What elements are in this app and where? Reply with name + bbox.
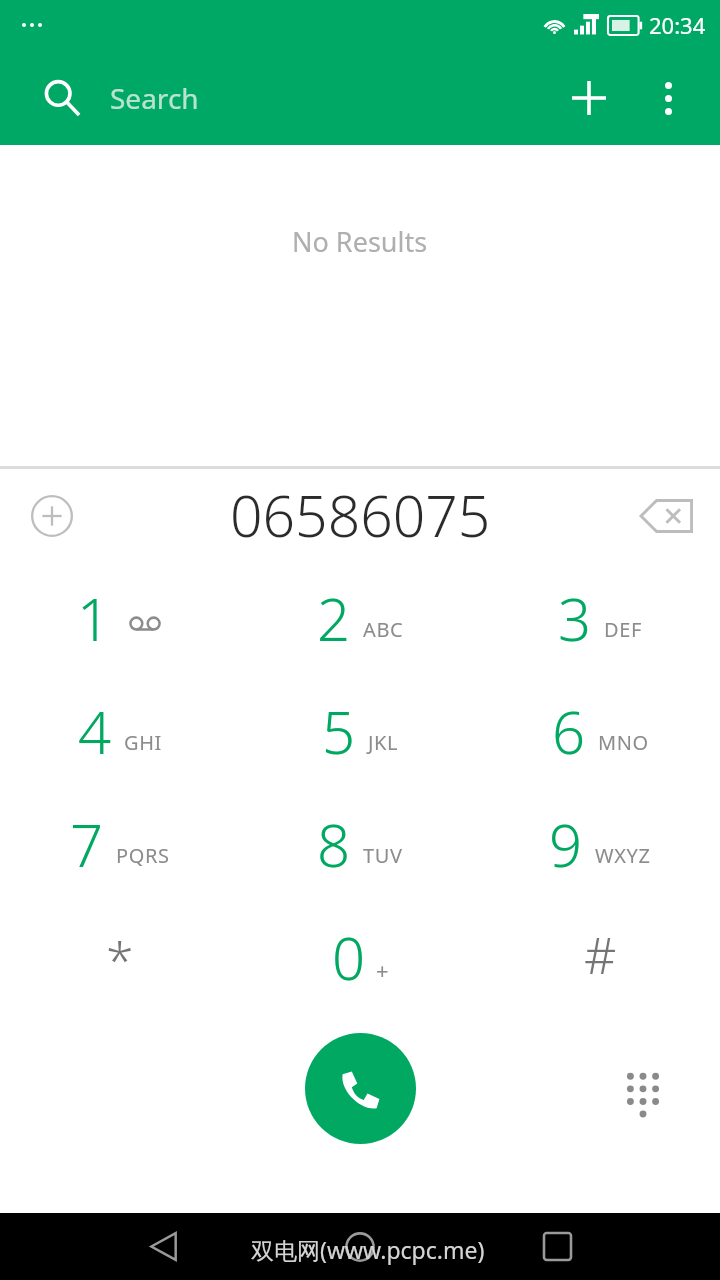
button[interactable]: 4 <box>0 675 240 788</box>
staticText: TUV <box>363 842 403 869</box>
staticText: DEF <box>604 616 642 643</box>
button[interactable]: 9 <box>480 788 720 901</box>
button[interactable]: 7 <box>0 788 240 901</box>
staticText: 5 <box>322 692 356 771</box>
staticText: Search <box>110 79 199 117</box>
staticText: 4 <box>78 692 112 771</box>
button[interactable]: Search <box>36 72 88 124</box>
button[interactable]: 3 <box>480 562 720 675</box>
button[interactable]: Add contact <box>558 67 620 129</box>
staticText: WXYZ <box>595 842 651 869</box>
staticText: * <box>106 926 134 994</box>
staticText: ABC <box>363 616 404 643</box>
staticText: + <box>376 955 389 985</box>
staticText: No Results <box>292 223 428 260</box>
staticText: MNO <box>598 729 649 756</box>
staticText: 8 <box>317 805 351 884</box>
button[interactable]: 8 <box>240 788 480 901</box>
button[interactable]: Add to contacts <box>20 484 84 548</box>
staticText: 2 <box>317 579 351 658</box>
staticText: JKL <box>368 729 399 756</box>
staticText: # <box>584 921 617 989</box>
staticText: 3 <box>558 579 592 658</box>
staticText: 双电网(www.pcpc.me) <box>251 1234 485 1265</box>
button[interactable]: 2 <box>240 562 480 675</box>
button[interactable]: Dialpad <box>608 1053 678 1123</box>
button[interactable]: Home <box>326 1213 394 1280</box>
button[interactable]: Search <box>110 50 558 145</box>
button[interactable]: 0 <box>240 901 480 1014</box>
button[interactable]: More options <box>642 72 694 124</box>
button[interactable]: 1 <box>0 562 240 675</box>
staticText: 9 <box>549 805 583 884</box>
button[interactable]: 5 <box>240 675 480 788</box>
staticText: 1 <box>77 579 111 658</box>
button[interactable]: 6 <box>480 675 720 788</box>
button[interactable]: # <box>480 901 720 1014</box>
staticText: 6 <box>552 692 586 771</box>
staticText: 0 <box>332 918 366 997</box>
staticText: PQRS <box>116 842 170 869</box>
staticText: 06586075 <box>230 476 491 554</box>
button[interactable]: * <box>0 901 240 1014</box>
button[interactable]: Back <box>129 1213 197 1280</box>
staticText: 7 <box>70 805 104 884</box>
button[interactable]: Backspace <box>632 481 702 551</box>
staticText: GHI <box>124 729 162 756</box>
button[interactable]: Call <box>305 1033 416 1144</box>
button[interactable]: Recents <box>523 1213 591 1280</box>
staticText: 20:34 <box>649 10 706 40</box>
